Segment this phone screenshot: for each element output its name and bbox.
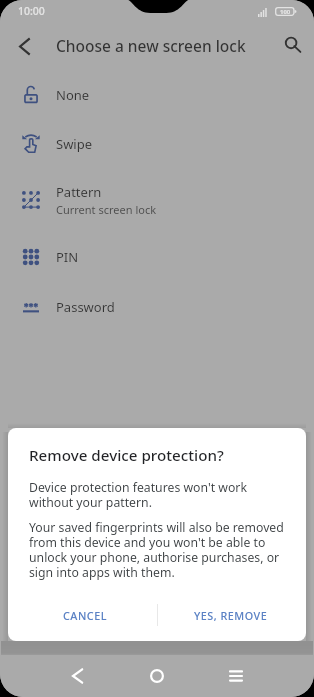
staticText: Choose a new screen lock bbox=[56, 35, 246, 56]
staticText: Your saved fingerprints will also be rem… bbox=[29, 519, 284, 581]
staticText: CANCEL bbox=[63, 608, 107, 623]
button[interactable]: Password bbox=[0, 282, 314, 332]
staticText: Current screen lock bbox=[56, 202, 157, 217]
button[interactable]: Recent apps bbox=[216, 656, 256, 696]
button[interactable]: Pattern bbox=[0, 168, 314, 232]
button[interactable]: CANCEL bbox=[53, 601, 117, 630]
button[interactable]: PIN bbox=[0, 232, 314, 282]
staticText: YES, REMOVE bbox=[194, 608, 268, 623]
button[interactable]: YES, REMOVE bbox=[184, 601, 278, 630]
button[interactable]: Back bbox=[58, 656, 98, 696]
button[interactable]: Search bbox=[274, 28, 310, 64]
button[interactable]: Swipe bbox=[0, 119, 314, 168]
button[interactable]: Home bbox=[137, 656, 177, 696]
staticText: Swipe bbox=[56, 135, 93, 153]
staticText: PIN bbox=[56, 248, 79, 266]
staticText: Device protection features won't work wi… bbox=[29, 479, 247, 511]
staticText: None bbox=[56, 86, 90, 104]
button[interactable]: Back bbox=[6, 28, 42, 64]
staticText: Pattern bbox=[56, 183, 102, 201]
staticText: Remove device protection? bbox=[29, 445, 224, 466]
button[interactable]: None bbox=[0, 70, 314, 119]
staticText: Password bbox=[56, 298, 115, 316]
staticText: 10:00 bbox=[18, 4, 45, 18]
staticText: 100 bbox=[280, 8, 291, 16]
